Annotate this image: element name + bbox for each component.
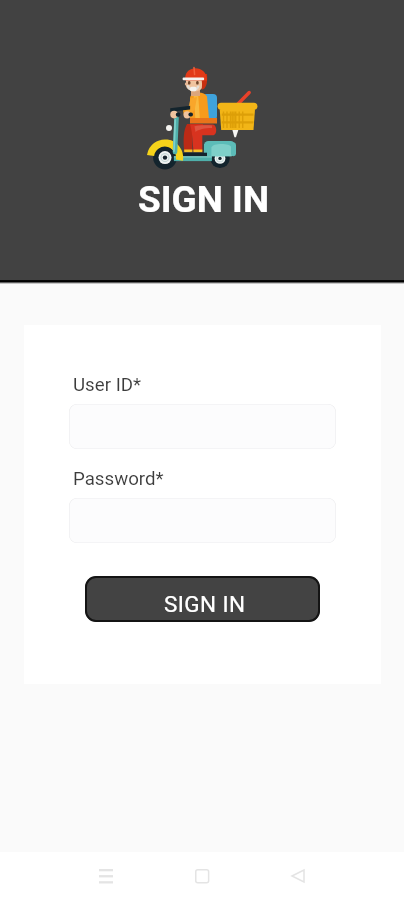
staticText: SIGN IN bbox=[138, 178, 270, 221]
staticText: Password* bbox=[73, 468, 164, 490]
button[interactable]: Recent apps bbox=[82, 852, 130, 900]
button[interactable]: Back bbox=[274, 852, 322, 900]
staticText: User ID* bbox=[73, 374, 142, 396]
button[interactable]: Home bbox=[178, 852, 226, 900]
staticText: SIGN IN bbox=[164, 591, 246, 617]
button[interactable]: SIGN IN bbox=[85, 576, 320, 622]
